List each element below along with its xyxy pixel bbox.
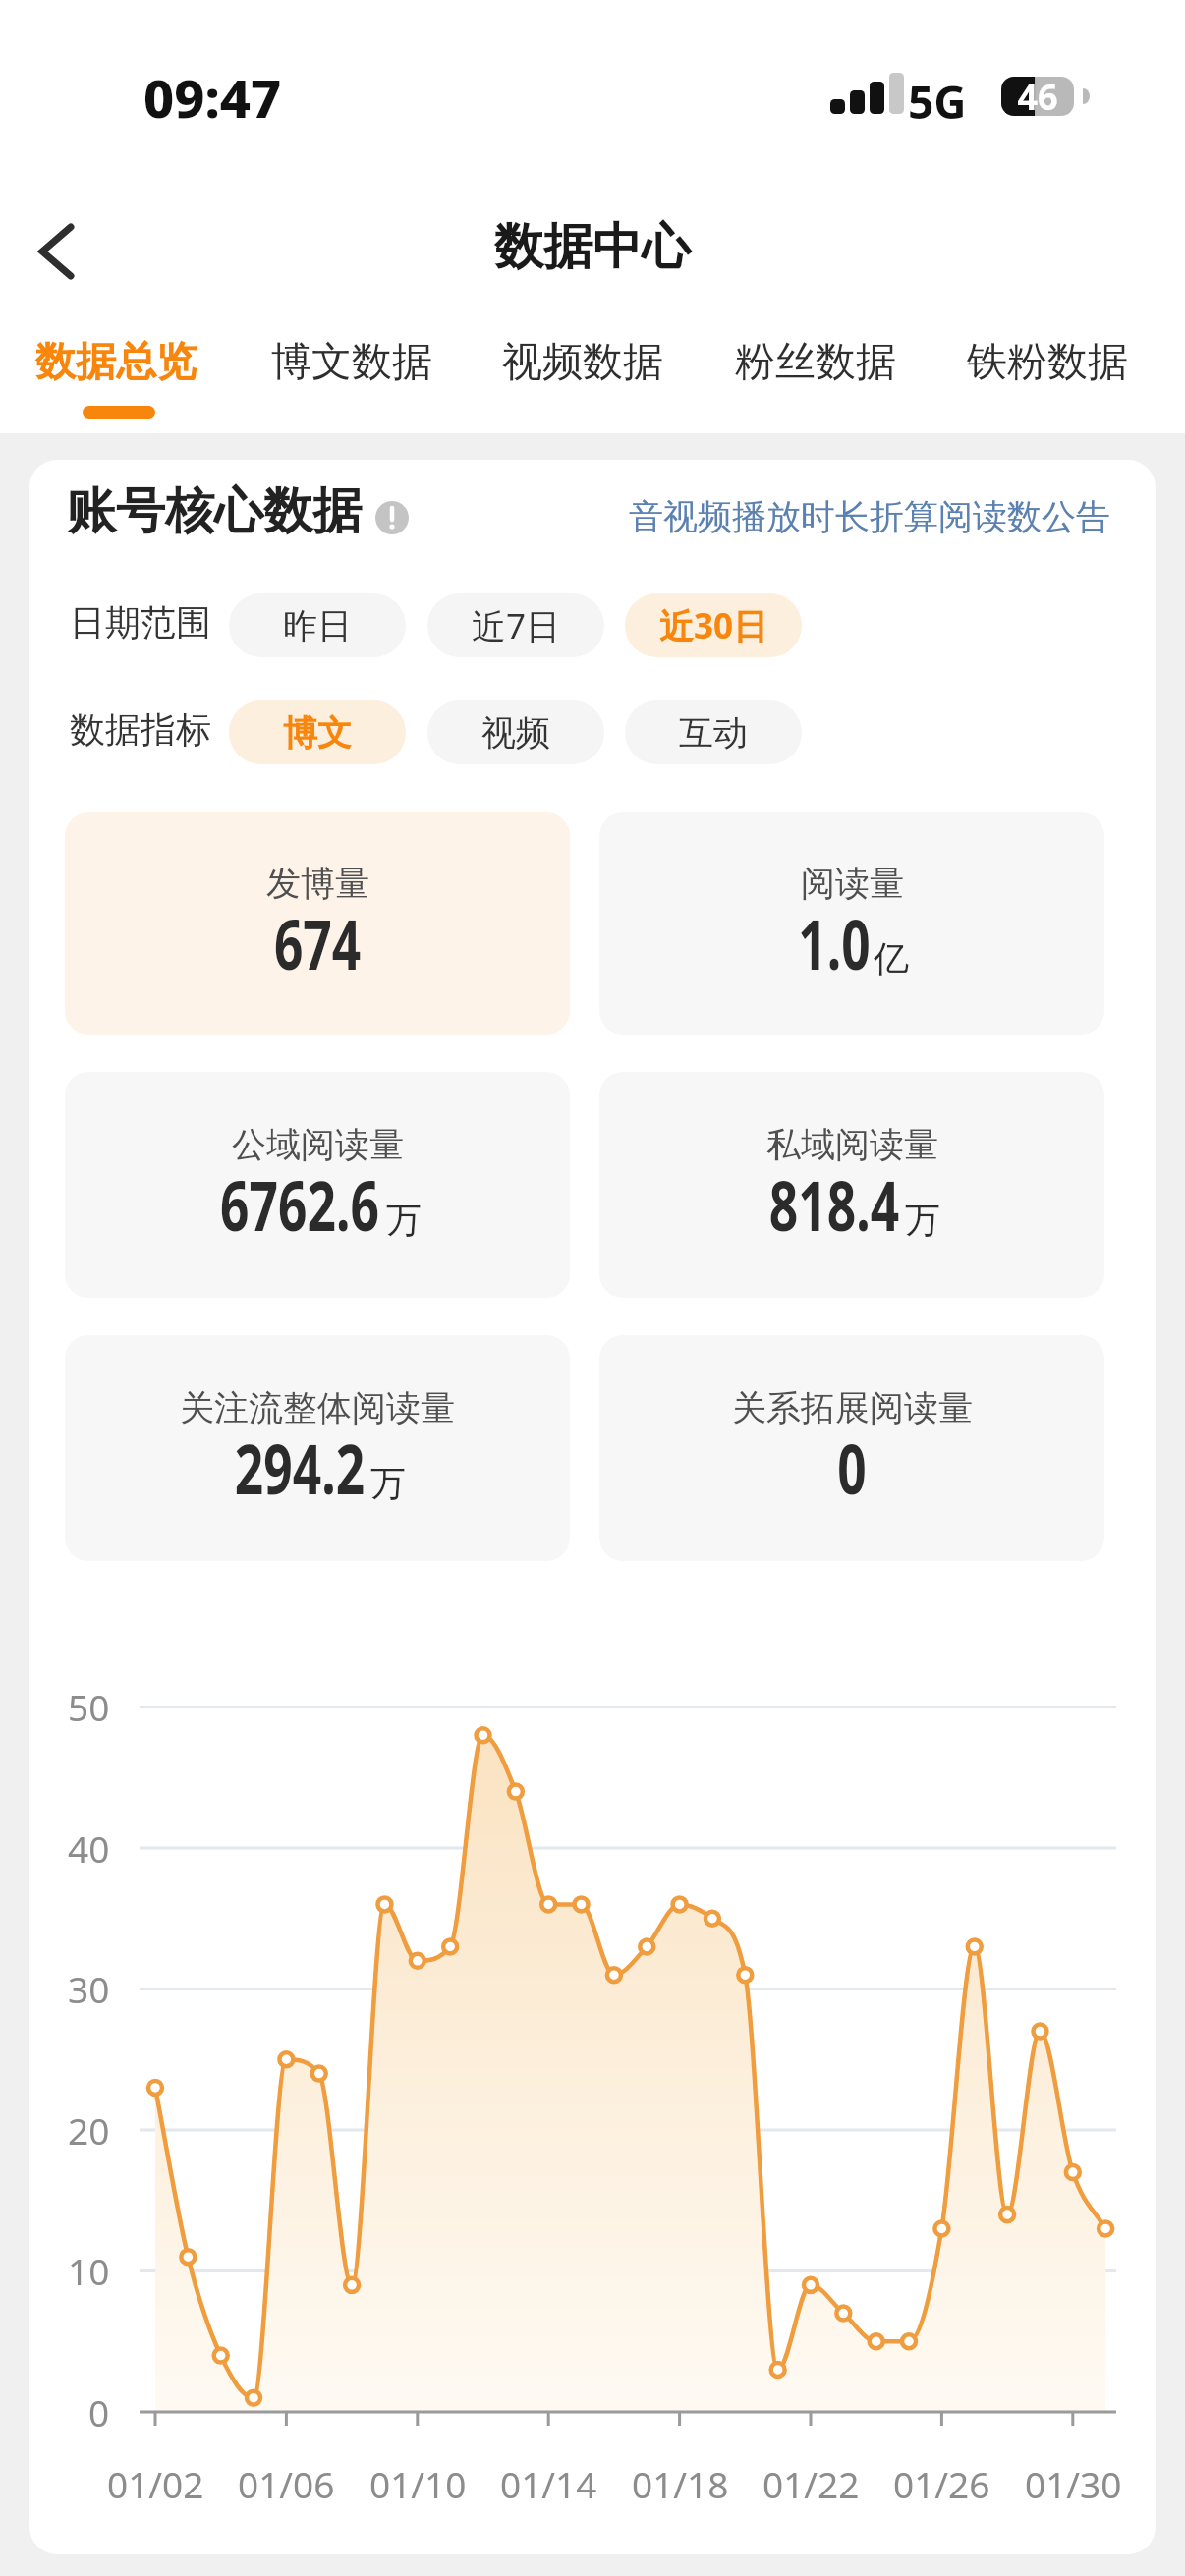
staticText: 20 — [68, 2105, 110, 2155]
button[interactable]: 音视频播放时长折算阅读数公告 — [629, 495, 1110, 538]
button[interactable]: 近7日 — [427, 593, 604, 657]
button[interactable]: 近30日 — [625, 593, 802, 657]
staticText: 01/22 — [762, 2459, 860, 2508]
staticText: 01/06 — [238, 2459, 335, 2508]
staticText: 10 — [68, 2246, 110, 2295]
staticText: 昨日 — [283, 604, 352, 647]
button[interactable]: 铁粉数据 — [959, 332, 1136, 393]
staticText: 0 — [837, 1421, 867, 1514]
staticText: 视频数据 — [502, 337, 663, 388]
button[interactable]: 博文数据 — [263, 332, 440, 393]
staticText: 01/14 — [500, 2459, 597, 2508]
staticText: 6762.6 — [220, 1158, 379, 1251]
staticText: 01/10 — [369, 2459, 467, 2508]
staticText: 万 — [905, 1198, 940, 1242]
staticText: 近30日 — [659, 602, 768, 649]
staticText: 关系拓展阅读量 — [732, 1386, 973, 1429]
staticText: 数据总览 — [35, 337, 197, 388]
staticText: 数据指标 — [70, 707, 211, 752]
staticText: 674 — [274, 897, 362, 989]
staticText: 日期范围 — [70, 600, 211, 644]
button[interactable]: 视频数据 — [494, 332, 671, 393]
staticText: 01/02 — [107, 2459, 204, 2508]
staticText: 视频 — [481, 711, 550, 755]
button[interactable]: 关系拓展阅读量 — [599, 1335, 1104, 1561]
staticText: 账号核心数据 — [67, 480, 362, 542]
button[interactable]: 互动 — [625, 700, 802, 764]
staticText: 40 — [68, 1823, 110, 1873]
button[interactable]: 昨日 — [229, 593, 406, 657]
staticText: 0 — [88, 2387, 110, 2436]
staticText: 私域阅读量 — [766, 1123, 938, 1166]
staticText: 博文 — [283, 711, 352, 755]
button[interactable]: 公域阅读量 — [65, 1072, 570, 1298]
staticText: 818.4 — [769, 1158, 899, 1251]
button[interactable]: 粉丝数据 — [727, 332, 904, 393]
staticText: 公域阅读量 — [232, 1123, 404, 1166]
staticText: 粉丝数据 — [735, 337, 896, 388]
staticText: 阅读量 — [801, 862, 904, 905]
staticText: 5G — [908, 71, 967, 133]
button[interactable]: 关注流整体阅读量 — [65, 1335, 570, 1561]
staticText: 294.2 — [235, 1421, 365, 1514]
staticText: 万 — [386, 1198, 422, 1242]
button[interactable]: 博文 — [229, 700, 406, 764]
staticText: 铁粉数据 — [967, 337, 1128, 388]
staticText: 01/18 — [632, 2459, 729, 2508]
button[interactable]: 视频 — [427, 700, 604, 764]
staticText: 数据中心 — [494, 216, 691, 278]
staticText: 互动 — [679, 711, 748, 755]
staticText: 30 — [68, 1964, 110, 2013]
staticText: 1.0 — [798, 897, 870, 989]
staticText: 46 — [1001, 73, 1074, 121]
button[interactable] — [35, 223, 77, 280]
staticText: 01/26 — [893, 2459, 990, 2508]
staticText: 50 — [68, 1682, 110, 1731]
staticText: 01/30 — [1025, 2459, 1122, 2508]
staticText: 博文数据 — [271, 337, 432, 388]
staticText: 关注流整体阅读量 — [180, 1386, 455, 1429]
staticText: 万 — [370, 1461, 406, 1505]
button[interactable]: 发博量 — [65, 812, 570, 1035]
staticText: 发博量 — [266, 862, 369, 905]
button[interactable]: 阅读量 — [599, 812, 1104, 1035]
button[interactable]: 数据总览 — [28, 332, 204, 393]
staticText: 09:47 — [143, 61, 282, 134]
staticText: 亿 — [874, 936, 909, 980]
button[interactable]: 私域阅读量 — [599, 1072, 1104, 1298]
staticText: 近7日 — [472, 602, 561, 649]
